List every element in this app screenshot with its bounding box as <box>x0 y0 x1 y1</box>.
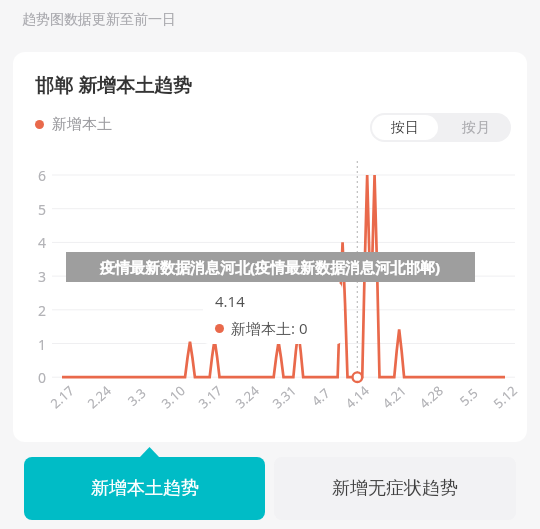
staticText: 5.5 <box>455 384 482 410</box>
staticText: 1 <box>38 335 47 354</box>
staticText: 4.14 <box>215 291 245 311</box>
staticText: 3.17 <box>194 382 226 412</box>
staticText: 2.24 <box>83 382 115 412</box>
staticText: 4 <box>38 233 47 252</box>
staticText: 按月 <box>462 119 490 137</box>
staticText: 2.17 <box>46 382 78 412</box>
staticText: 3.3 <box>123 384 150 410</box>
staticText: 新增本土 <box>52 115 112 134</box>
staticText: 3.10 <box>157 382 189 412</box>
staticText: 0 <box>38 368 47 387</box>
staticText: 按日 <box>391 119 419 137</box>
button[interactable]: 按月 <box>440 113 511 142</box>
staticText: 4.14 <box>341 382 373 412</box>
staticText: 邯郸 新增本土趋势 <box>35 72 192 98</box>
staticText: 6 <box>38 166 47 185</box>
button[interactable]: 按日 <box>372 115 438 140</box>
staticText: 新增本土: 0 <box>231 318 308 338</box>
button[interactable]: 新增无症状趋势 <box>274 457 516 520</box>
staticText: 2 <box>38 301 47 320</box>
staticText: 4.28 <box>415 382 447 412</box>
staticText: 趋势图数据更新至前一日 <box>22 11 176 29</box>
staticText: 3.31 <box>268 382 300 412</box>
staticText: 新增本土趋势 <box>91 477 199 500</box>
staticText: 新增无症状趋势 <box>332 477 458 500</box>
staticText: 4.21 <box>378 382 410 412</box>
staticText: 5.12 <box>489 382 521 412</box>
staticText: 3.24 <box>231 382 263 412</box>
staticText: 3 <box>38 267 47 286</box>
button[interactable]: 新增本土趋势 <box>24 457 265 520</box>
staticText: 疫情最新数据消息河北(疫情最新数据消息河北邯郸) <box>100 257 441 277</box>
staticText: 4.7 <box>307 384 334 410</box>
staticText: 5 <box>38 200 47 219</box>
